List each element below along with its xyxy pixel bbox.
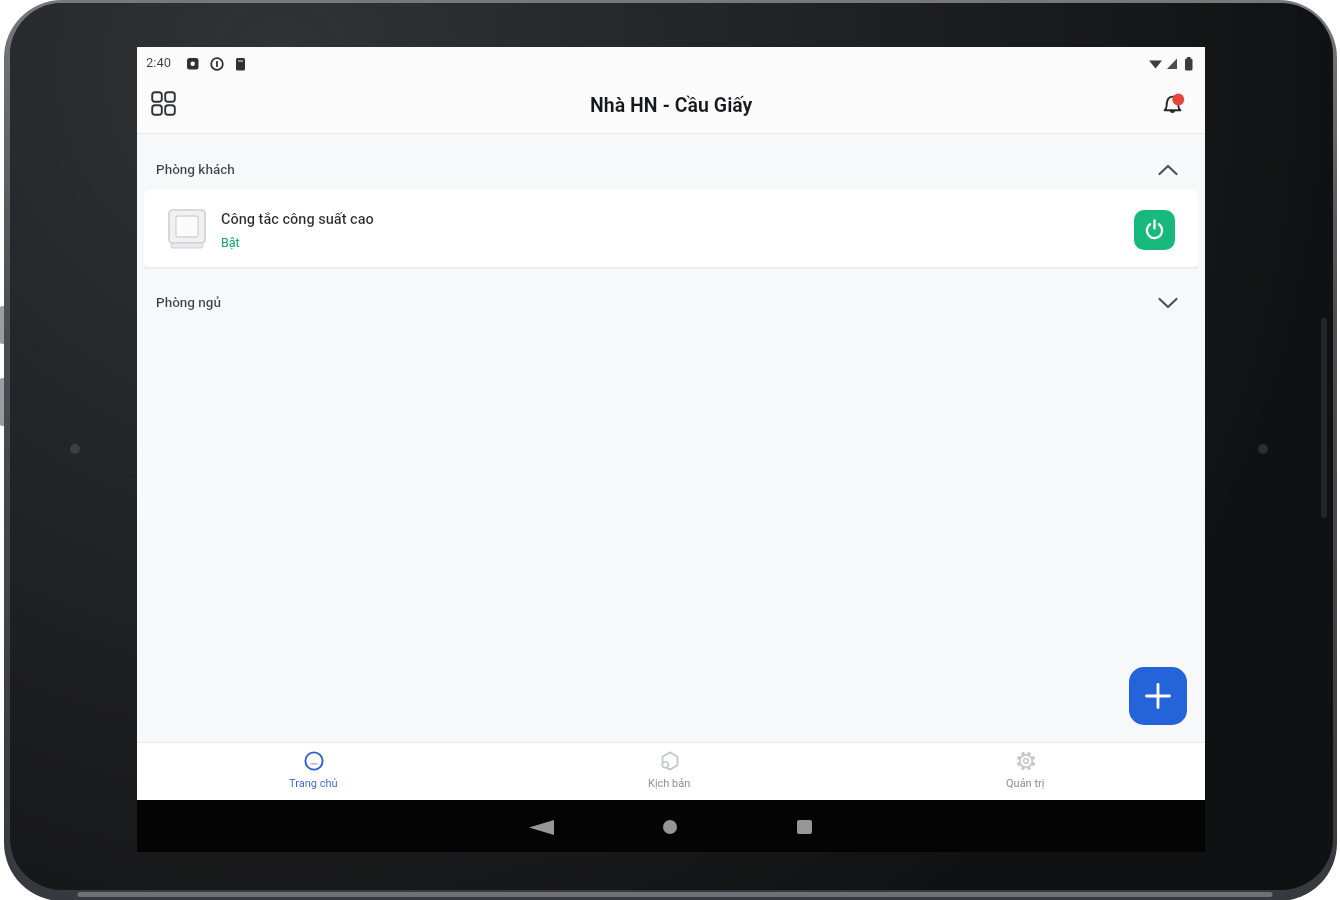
- staticText: Phòng khách: [156, 161, 235, 177]
- button[interactable]: Phòng khách: [137, 134, 1205, 190]
- button[interactable]: Quản trị: [970, 742, 1080, 800]
- staticText: Quản trị: [1006, 777, 1045, 790]
- button[interactable]: Phòng ngủ: [137, 267, 1205, 335]
- staticText: 2:40: [146, 55, 172, 70]
- staticText: Trang chủ: [289, 777, 338, 790]
- staticText: Nhà HN - Cầu Giấy: [590, 94, 753, 117]
- button[interactable]: [1159, 91, 1187, 119]
- staticText: Công tắc công suất cao: [221, 211, 374, 228]
- staticText: Bật: [221, 235, 240, 250]
- button[interactable]: [150, 90, 178, 118]
- staticText: Phòng ngủ: [156, 294, 222, 310]
- button[interactable]: Công tắc công suất cao: [144, 190, 1198, 267]
- button[interactable]: Trang chủ: [258, 742, 368, 800]
- button[interactable]: [1134, 210, 1175, 250]
- staticText: Kịch bản: [648, 777, 691, 790]
- button[interactable]: Kịch bản: [614, 742, 724, 800]
- button[interactable]: [1129, 667, 1187, 725]
